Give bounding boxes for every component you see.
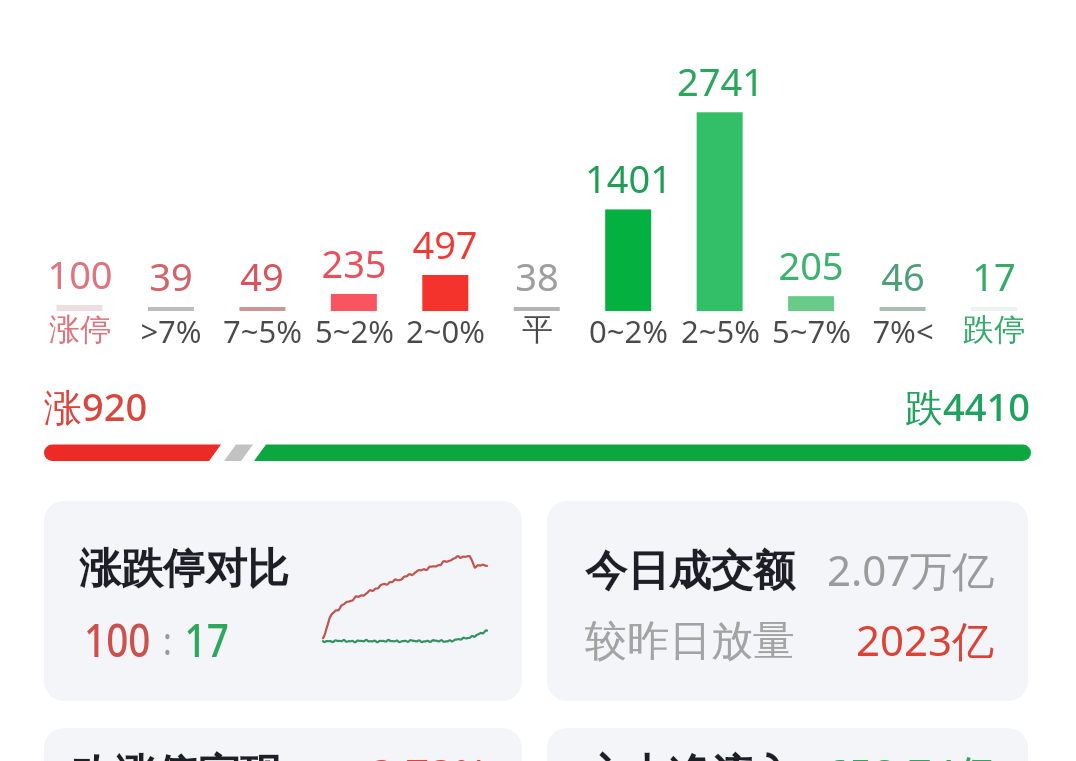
button[interactable]: 主力净流入 [547, 728, 1028, 761]
staticText: 205 [778, 239, 844, 291]
staticText: : [163, 614, 173, 666]
button[interactable]: 7~5% [217, 306, 307, 354]
staticText: 7%< [872, 310, 934, 352]
button[interactable]: 涨停 [35, 306, 125, 354]
staticText: -658.74亿 [811, 745, 998, 761]
staticText: 497 [412, 218, 478, 270]
staticText: 跌停 [963, 310, 1025, 349]
staticText: 5~7% [772, 310, 851, 352]
staticText: 主力净流入 [585, 749, 795, 761]
staticText: 平 [522, 310, 553, 349]
staticText: 2741 [677, 55, 764, 107]
button[interactable]: 0~2% [583, 306, 673, 354]
staticText: 涨停 [49, 310, 111, 349]
button[interactable]: 改涨停家现 [44, 728, 522, 761]
button[interactable]: 2~0% [400, 306, 490, 354]
staticText: 今日成交额 [585, 545, 795, 598]
staticText: >7% [140, 310, 202, 352]
staticText: 17 [185, 609, 229, 670]
staticText: 2.07万亿 [827, 541, 995, 598]
staticText: 5~2% [315, 310, 394, 352]
staticText: 较昨日放量 [585, 615, 795, 668]
staticText: 2023亿 [856, 611, 995, 668]
button[interactable]: 7%< [858, 306, 948, 354]
button[interactable]: 2~5% [675, 306, 765, 354]
button[interactable]: 5~7% [766, 306, 856, 354]
staticText: 跌4410 [905, 380, 1030, 432]
staticText: 2~5% [681, 310, 760, 352]
staticText: 涨跌停对比 [79, 543, 289, 596]
staticText: 1401 [585, 152, 672, 204]
staticText: 2~0% [406, 310, 485, 352]
staticText: 100 [47, 248, 113, 300]
staticText: 38 [515, 250, 559, 302]
staticText: 39 [149, 250, 193, 302]
staticText: 46 [881, 250, 925, 302]
staticText: 改涨停家现 [72, 749, 282, 761]
button[interactable]: 5~2% [309, 306, 399, 354]
staticText: 3.73% [370, 745, 489, 761]
button[interactable]: 涨跌停对比 [44, 501, 522, 701]
button[interactable]: 平 [492, 306, 582, 354]
staticText: 17 [972, 250, 1016, 302]
staticText: 7~5% [223, 310, 302, 352]
staticText: 100 [84, 609, 151, 670]
button[interactable]: >7% [126, 306, 216, 354]
staticText: 0~2% [589, 310, 668, 352]
staticText: 235 [321, 237, 387, 289]
staticText: 49 [240, 250, 284, 302]
button[interactable]: 今日成交额 [547, 501, 1028, 701]
button[interactable]: 跌停 [949, 306, 1039, 354]
staticText: 涨920 [44, 380, 148, 432]
